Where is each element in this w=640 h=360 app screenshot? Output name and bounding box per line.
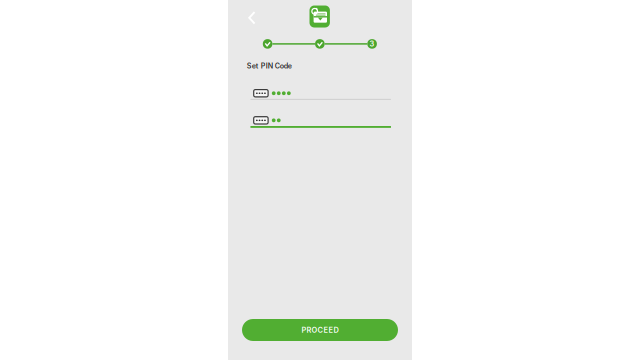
button[interactable]: PROCEED bbox=[242, 319, 398, 341]
staticText: PROCEED bbox=[301, 325, 338, 334]
button[interactable]: Back bbox=[241, 6, 263, 30]
staticText: 3 bbox=[370, 39, 375, 48]
staticText: Set PIN Code bbox=[247, 62, 292, 70]
button[interactable]: Confirm PIN code bbox=[250, 117, 391, 128]
button[interactable]: PIN code bbox=[250, 90, 391, 100]
